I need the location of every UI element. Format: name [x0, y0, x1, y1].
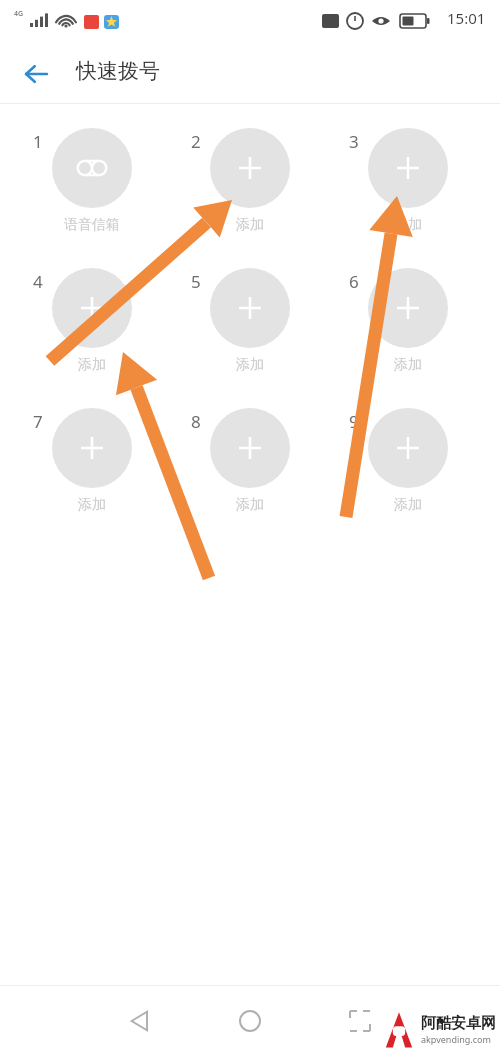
staticText: 4 — [33, 270, 43, 293]
button[interactable]: Back — [14, 52, 58, 96]
staticText: akpvending.com — [421, 1033, 491, 1045]
staticText: 1 — [33, 130, 43, 153]
button[interactable]: 6 — [348, 268, 468, 380]
staticText: 添加 — [394, 216, 422, 234]
button[interactable]: 3 — [348, 128, 468, 240]
staticText: 添加 — [394, 356, 422, 374]
button[interactable]: Recents — [330, 991, 390, 1051]
staticText: 4G — [14, 9, 24, 19]
staticText: 6 — [349, 270, 359, 293]
button[interactable]: 8 — [190, 408, 310, 520]
staticText: 2 — [191, 130, 201, 153]
staticText: 阿酷安卓网 — [421, 1014, 496, 1033]
staticText: 语音信箱 — [64, 216, 120, 234]
button[interactable]: 5 — [190, 268, 310, 380]
button[interactable]: Home — [220, 991, 280, 1051]
button[interactable]: 9 — [348, 408, 468, 520]
staticText: 添加 — [236, 496, 264, 514]
staticText: 快速拨号 — [76, 58, 160, 84]
button[interactable]: 7 — [32, 408, 152, 520]
staticText: 7 — [33, 410, 43, 433]
staticText: 8 — [191, 410, 201, 433]
staticText: 3 — [349, 130, 359, 153]
button[interactable]: 4 — [32, 268, 152, 380]
button[interactable]: Back — [110, 991, 170, 1051]
staticText: 9 — [349, 410, 359, 433]
staticText: 添加 — [78, 356, 106, 374]
staticText: 添加 — [78, 496, 106, 514]
staticText: 添加 — [236, 356, 264, 374]
staticText: 添加 — [394, 496, 422, 514]
staticText: 添加 — [236, 216, 264, 234]
button[interactable]: 1 — [32, 128, 152, 240]
button[interactable]: 2 — [190, 128, 310, 240]
staticText: 15:01 — [447, 8, 486, 28]
staticText: 5 — [191, 270, 201, 293]
